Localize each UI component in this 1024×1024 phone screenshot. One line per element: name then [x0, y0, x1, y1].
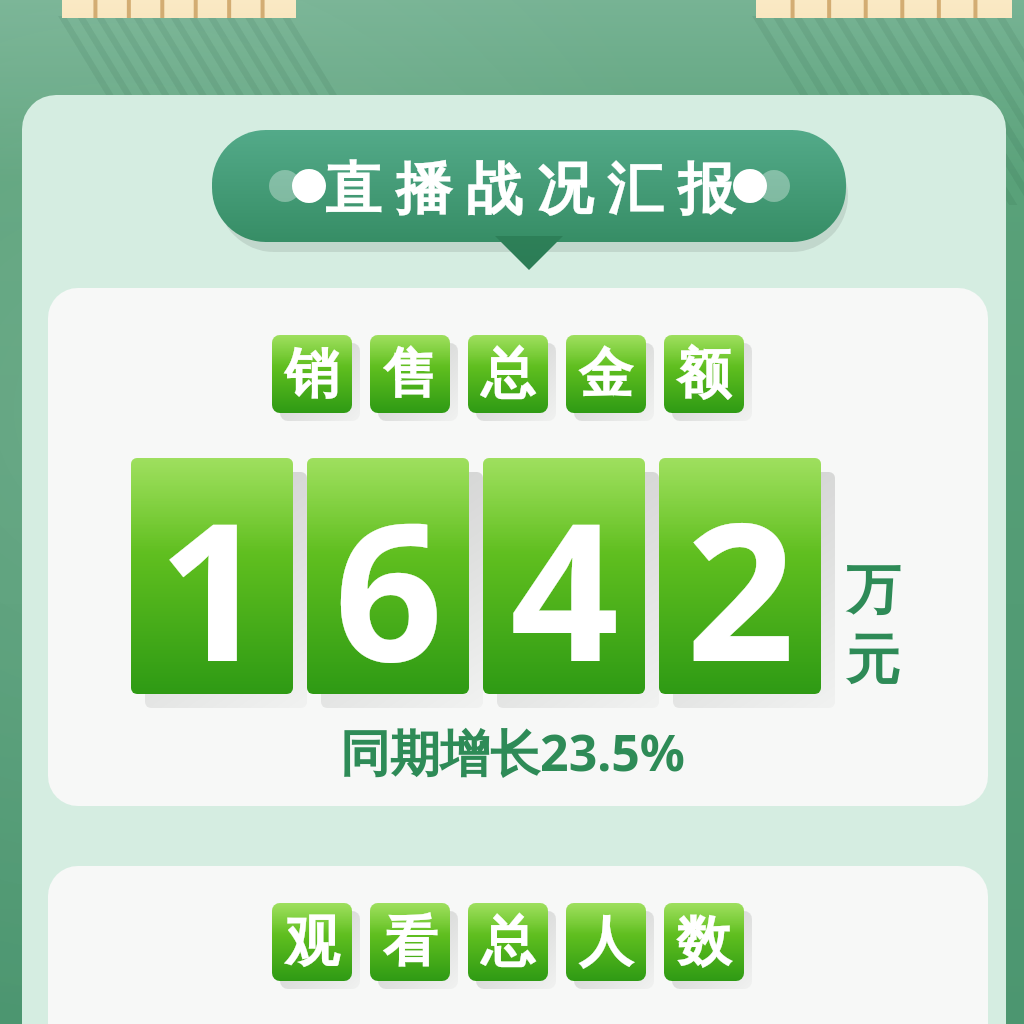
staticText: 金	[579, 340, 633, 408]
staticText: 万	[846, 556, 900, 624]
staticText: 额	[677, 340, 731, 408]
staticText: 元	[846, 626, 900, 694]
staticText: 看	[383, 908, 437, 976]
staticText: 数	[677, 908, 731, 976]
staticText: 2	[686, 458, 795, 694]
staticText: 总	[481, 908, 535, 976]
button[interactable]: 观看总人数	[0, 903, 1024, 989]
staticText: 总	[481, 340, 535, 408]
staticText: 4	[510, 458, 619, 694]
staticText: 1	[158, 458, 267, 694]
staticText: 同期增长23.5%	[340, 718, 685, 786]
staticText: 直 播 战 况 汇 报	[325, 148, 734, 224]
button[interactable]: 直播战况汇报	[212, 130, 846, 262]
button[interactable]: 销售总金额	[0, 335, 1024, 421]
button[interactable]	[48, 866, 988, 1024]
button[interactable]	[48, 288, 988, 806]
staticText: 6	[334, 458, 443, 694]
staticText: 销	[285, 340, 339, 408]
staticText: 观	[285, 908, 339, 976]
staticText: 人	[579, 908, 633, 976]
staticText: 售	[383, 340, 437, 408]
